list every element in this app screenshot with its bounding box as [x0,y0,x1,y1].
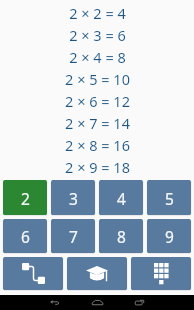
button[interactable]: 2 × 3 = 6 [0,24,194,46]
staticText: 4 [117,188,126,209]
staticText: 2 × 6 = 12 [65,91,130,111]
button[interactable]: 2 [3,180,47,215]
button[interactable]: Back [34,295,76,310]
button[interactable]: 2 × 2 = 4 [0,2,194,24]
button[interactable]: 2 × 5 = 10 [0,68,194,90]
button[interactable]: Learn [67,257,127,290]
staticText: 6 [21,226,30,247]
button[interactable]: 7 [51,219,95,253]
button[interactable]: 8 [99,219,143,253]
staticText: 3 [69,188,78,209]
button[interactable]: 2 × 7 = 14 [0,112,194,134]
staticText: 8 [117,226,126,247]
staticText: 2 × 3 = 6 [69,25,126,45]
staticText: 2 [21,188,30,209]
button[interactable]: 6 [3,219,47,253]
staticText: 2 × 5 = 10 [65,69,130,89]
button[interactable]: 2 × 4 = 8 [0,46,194,68]
staticText: 2 × 8 = 16 [65,135,130,155]
button[interactable]: Home [76,295,118,310]
button[interactable]: 5 [147,180,191,215]
staticText: 2 × 7 = 14 [65,113,130,133]
staticText: 2 × 2 = 4 [69,3,126,23]
button[interactable]: 2 × 8 = 16 [0,134,194,156]
button[interactable]: 4 [99,180,143,215]
button[interactable]: 9 [147,219,191,253]
button[interactable]: 2 × 6 = 12 [0,90,194,112]
button[interactable]: 3 [51,180,95,215]
button[interactable]: Keypad [131,257,191,290]
staticText: 9 [165,226,174,247]
staticText: 2 × 9 = 18 [65,157,130,177]
staticText: 7 [69,226,78,247]
button[interactable]: Recent apps [118,295,160,310]
button[interactable]: Practice [3,257,63,290]
staticText: 5 [165,188,174,209]
button[interactable]: 2 × 9 = 18 [0,156,194,178]
staticText: 2 × 4 = 8 [69,47,126,67]
